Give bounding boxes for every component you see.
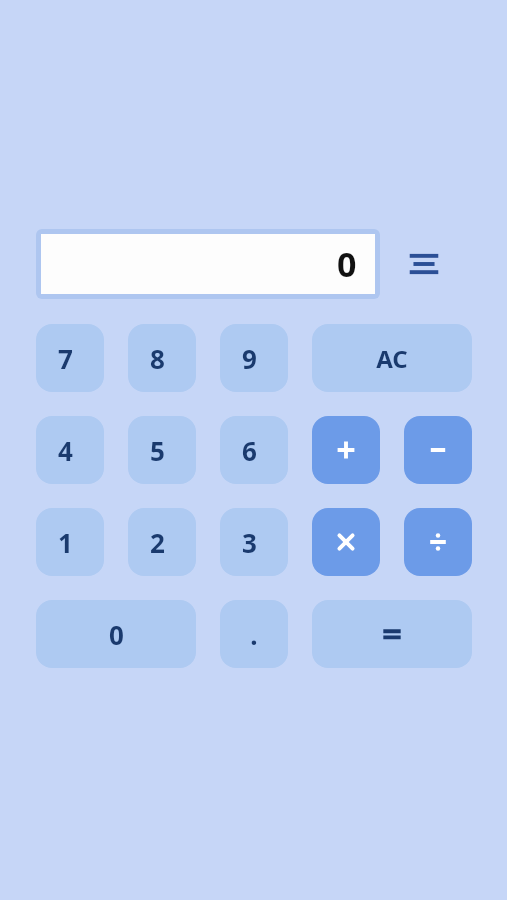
staticText: 8	[150, 341, 165, 376]
button[interactable]: 4	[36, 416, 104, 484]
staticText: 9	[242, 341, 257, 376]
staticText: 0	[337, 241, 357, 287]
button[interactable]: 5	[128, 416, 196, 484]
button[interactable]: 7	[36, 324, 104, 392]
staticText: 1	[58, 525, 73, 560]
button[interactable]: 8	[128, 324, 196, 392]
button[interactable]: 2	[128, 508, 196, 576]
button[interactable]: 0	[41, 234, 375, 294]
staticText: AC	[376, 342, 408, 375]
button[interactable]: AC	[312, 324, 472, 392]
staticText: .	[250, 617, 258, 652]
button[interactable]: Minus	[404, 416, 472, 484]
button[interactable]: 1	[36, 508, 104, 576]
button[interactable]: 6	[220, 416, 288, 484]
button[interactable]: Divide	[404, 508, 472, 576]
staticText: 5	[150, 433, 165, 468]
staticText: 4	[58, 433, 73, 468]
button[interactable]: Equals	[312, 600, 472, 668]
button[interactable]: 3	[220, 508, 288, 576]
staticText: 0	[109, 617, 124, 652]
staticText: 7	[58, 341, 73, 376]
button[interactable]: Plus	[312, 416, 380, 484]
staticText: 3	[242, 525, 257, 560]
staticText: 2	[150, 525, 165, 560]
button[interactable]: Multiply	[312, 508, 380, 576]
button[interactable]: Menu	[402, 242, 446, 286]
button[interactable]: 0	[36, 600, 196, 668]
button[interactable]: 9	[220, 324, 288, 392]
staticText: 6	[242, 433, 257, 468]
button[interactable]: .	[220, 600, 288, 668]
